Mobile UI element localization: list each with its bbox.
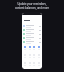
staticText: content balances, and more — [15, 6, 49, 10]
button[interactable] — [23, 40, 41, 44]
button[interactable] — [23, 28, 41, 32]
button[interactable] — [23, 36, 41, 40]
button[interactable] — [23, 24, 41, 28]
button[interactable] — [23, 32, 41, 36]
staticText: Update your reminders, — [17, 2, 47, 6]
